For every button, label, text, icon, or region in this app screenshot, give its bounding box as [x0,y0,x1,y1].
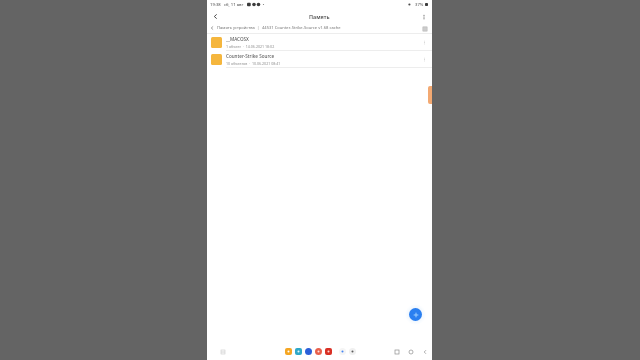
staticText: Counter-Strike Source [226,53,275,59]
button[interactable]: Recents [392,347,401,356]
button[interactable] [315,348,322,355]
button[interactable]: Add [409,308,422,321]
staticText: 10 объектов · 10.06.2021 08:41 [226,61,281,66]
button[interactable] [295,348,302,355]
button[interactable]: Item options [419,37,429,47]
button[interactable]: Home [406,347,415,356]
button[interactable]: Back [210,11,221,22]
button[interactable]: Item options [419,54,429,64]
staticText: Память [309,13,330,20]
staticText: 37% [415,2,424,8]
button[interactable] [325,348,332,355]
staticText: | [257,25,260,31]
staticText: __MACOSX [226,36,249,42]
button[interactable]: Select [420,24,429,33]
button[interactable]: Память устройства [207,23,432,33]
button[interactable] [349,348,356,355]
button[interactable]: Counter-Strike Source [207,51,432,67]
button[interactable]: Back [420,347,429,356]
staticText: 1 объект · 14.06.2021 18:02 [226,44,275,49]
staticText: 19:38 сб, 11 авг [210,2,244,8]
button[interactable] [305,348,312,355]
button[interactable] [339,348,346,355]
staticText: Память устройства [217,25,255,31]
button[interactable] [285,348,292,355]
staticText: 44531 Counter-Strike-Source v1.68 cache [262,25,341,31]
button[interactable]: Apps [219,348,227,356]
button[interactable]: More options [418,11,429,22]
button[interactable]: __MACOSX [207,34,432,50]
